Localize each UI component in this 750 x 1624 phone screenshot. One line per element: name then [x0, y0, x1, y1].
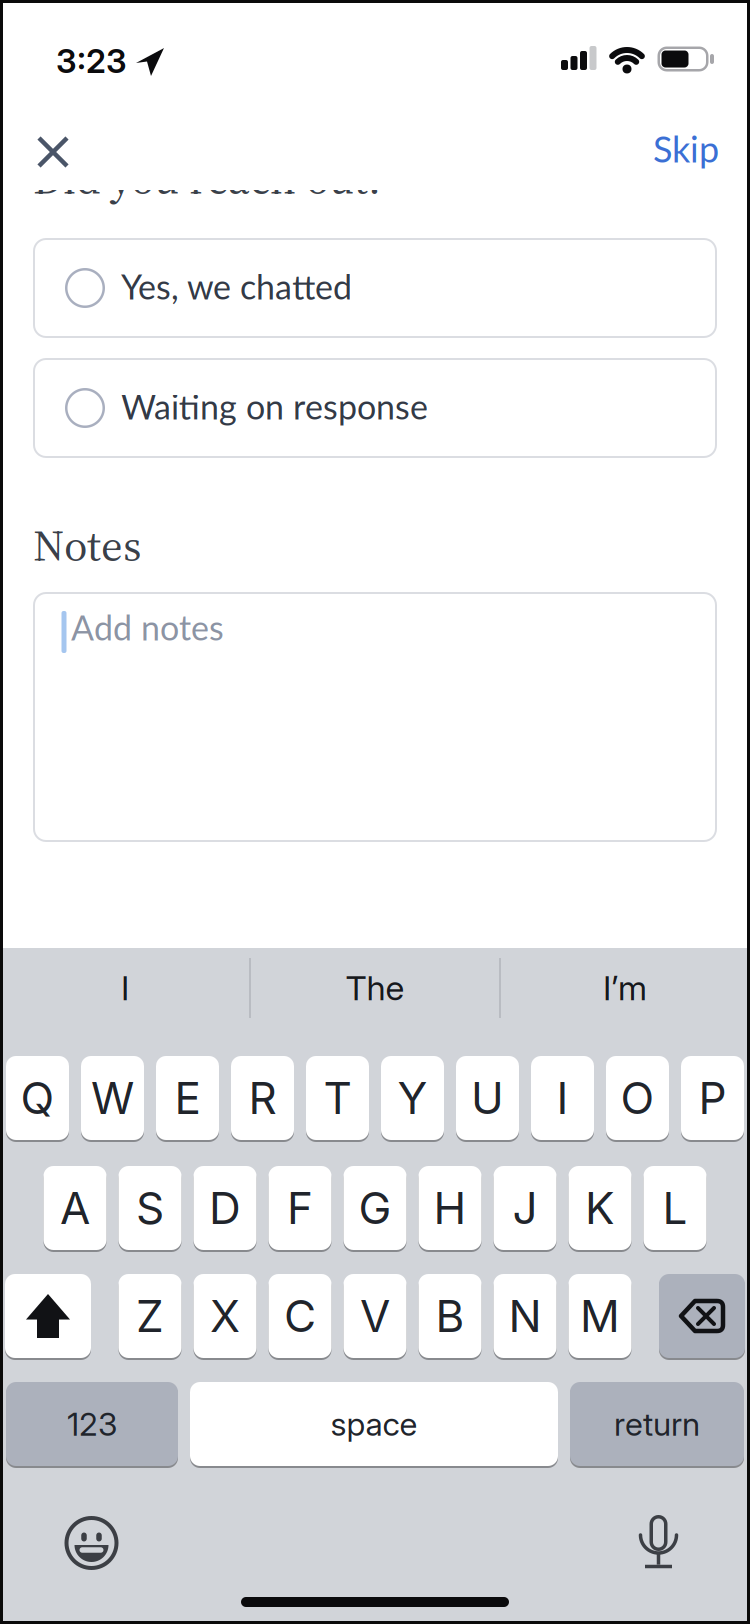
- staticText: A: [60, 1181, 90, 1235]
- staticText: Z: [136, 1289, 164, 1343]
- staticText: Skip: [653, 127, 719, 170]
- staticText: I: [556, 1071, 568, 1125]
- staticText: Did you reach out?: [33, 148, 386, 208]
- staticText: I’m: [603, 967, 647, 1008]
- staticText: N: [508, 1289, 541, 1343]
- staticText: V: [360, 1289, 390, 1343]
- staticText: L: [662, 1181, 687, 1235]
- staticText: D: [209, 1181, 241, 1235]
- staticText: J: [512, 1181, 537, 1235]
- staticText: The: [345, 967, 404, 1008]
- staticText: 3:23: [56, 41, 127, 81]
- staticText: 123: [67, 1405, 117, 1443]
- staticText: Y: [397, 1071, 427, 1125]
- staticText: C: [284, 1289, 316, 1343]
- staticText: Notes: [33, 515, 141, 575]
- staticText: K: [585, 1181, 615, 1235]
- staticText: X: [210, 1289, 240, 1343]
- staticText: O: [620, 1071, 654, 1125]
- staticText: I: [121, 967, 129, 1008]
- staticText: W: [91, 1071, 134, 1125]
- staticText: H: [433, 1181, 466, 1235]
- staticText: Yes, we chatted: [121, 266, 352, 307]
- staticText: P: [698, 1071, 726, 1125]
- staticText: S: [136, 1181, 164, 1235]
- staticText: Q: [20, 1071, 54, 1125]
- staticText: R: [248, 1071, 276, 1125]
- staticText: return: [614, 1405, 700, 1443]
- staticText: M: [580, 1289, 620, 1343]
- staticText: T: [323, 1071, 351, 1125]
- staticText: Waiting on response: [121, 386, 428, 427]
- staticText: E: [174, 1071, 200, 1125]
- staticText: Add notes: [71, 607, 224, 648]
- staticText: B: [435, 1289, 464, 1343]
- staticText: space: [330, 1405, 417, 1443]
- staticText: F: [287, 1181, 313, 1235]
- staticText: U: [471, 1071, 504, 1125]
- staticText: G: [358, 1181, 391, 1235]
